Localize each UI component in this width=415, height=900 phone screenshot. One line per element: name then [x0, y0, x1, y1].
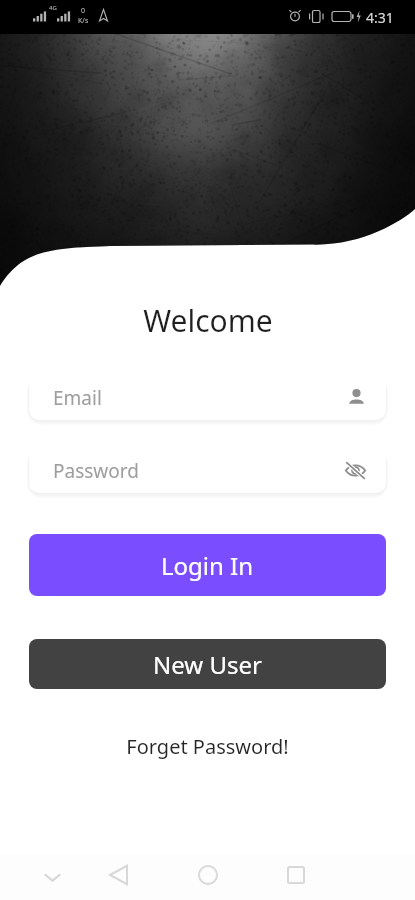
- staticText: 0: [81, 6, 86, 16]
- button[interactable]: Recents: [287, 866, 305, 884]
- staticText: New User: [153, 648, 262, 681]
- staticText: Login In: [161, 549, 254, 582]
- staticText: 4G: [49, 4, 57, 12]
- button[interactable]: Password: [29, 448, 386, 493]
- button[interactable]: Email: [29, 375, 386, 420]
- button[interactable]: Login In: [29, 534, 386, 596]
- staticText: Welcome: [143, 300, 273, 341]
- staticText: K/s: [78, 16, 89, 26]
- staticText: 4:31: [366, 8, 394, 27]
- staticText: Password: [53, 458, 139, 484]
- button[interactable]: Home: [198, 865, 218, 885]
- button[interactable]: Hide keyboard: [44, 868, 61, 885]
- button[interactable]: Back: [109, 865, 129, 885]
- staticText: Forget Password!: [126, 733, 289, 760]
- button[interactable]: New User: [29, 639, 386, 689]
- staticText: Email: [53, 385, 102, 411]
